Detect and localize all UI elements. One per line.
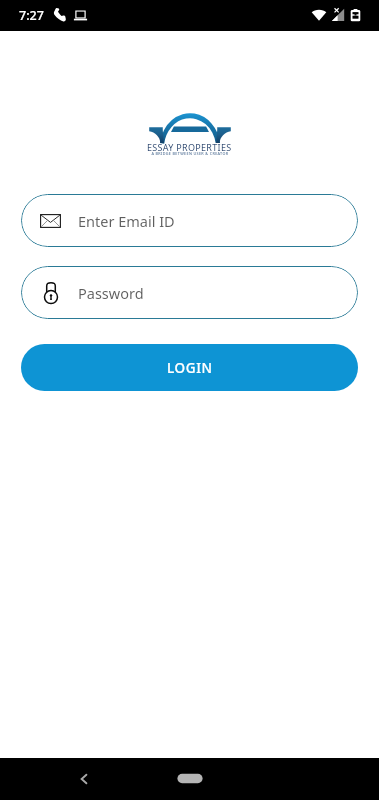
staticText: LOGIN: [167, 359, 213, 377]
button[interactable]: Home: [160, 767, 220, 791]
staticText: Password: [78, 283, 144, 303]
staticText: ESSAY PROPERTIES: [147, 141, 232, 153]
button[interactable]: Back: [65, 760, 103, 798]
button[interactable]: Password: [21, 266, 358, 319]
staticText: Enter Email ID: [78, 211, 175, 231]
button[interactable]: LOGIN: [21, 344, 358, 391]
staticText: 7:27: [19, 7, 44, 24]
button[interactable]: Enter Email ID: [21, 194, 358, 247]
